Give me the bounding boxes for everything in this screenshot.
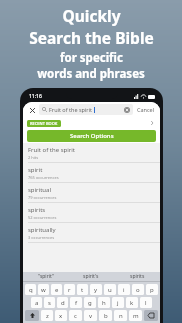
button[interactable]: a <box>31 297 42 308</box>
button[interactable]: y <box>90 284 102 295</box>
staticText: o <box>136 286 140 294</box>
button[interactable]: Backspace <box>144 310 158 321</box>
staticText: i <box>123 286 125 294</box>
staticText: a <box>35 299 39 307</box>
button[interactable]: s <box>44 297 55 308</box>
staticText: q <box>29 286 33 294</box>
button[interactable]: i <box>118 284 130 295</box>
button[interactable]: Fruit of the spirit <box>23 143 160 163</box>
staticText: z <box>46 312 49 320</box>
staticText: "spirit" <box>38 273 54 280</box>
staticText: u <box>108 286 112 294</box>
staticText: RECENT BOOK <box>30 121 58 126</box>
staticText: e <box>55 286 59 294</box>
staticText: 765 occurrences <box>28 175 59 180</box>
staticText: 52 occurrences <box>28 215 57 220</box>
staticText: Search the Bible <box>29 27 154 48</box>
staticText: r <box>68 286 71 294</box>
staticText: k <box>130 299 134 307</box>
staticText: 79 occurrences <box>28 195 57 200</box>
staticText: Cancel <box>137 106 155 113</box>
button[interactable]: e <box>51 284 62 295</box>
staticText: t <box>81 286 84 294</box>
staticText: j <box>117 299 119 307</box>
staticText: words and phrases <box>37 66 145 82</box>
staticText: spirit <box>28 166 43 174</box>
button[interactable]: k <box>126 297 138 308</box>
button[interactable]: u <box>104 284 116 295</box>
button[interactable]: b <box>99 310 112 321</box>
staticText: 11:16 <box>29 93 42 100</box>
staticText: y <box>94 286 98 294</box>
button[interactable]: c <box>69 310 82 321</box>
button[interactable]: g <box>84 297 96 308</box>
button[interactable]: d <box>57 297 68 308</box>
staticText: h <box>102 299 106 307</box>
staticText: spiritual <box>28 186 51 194</box>
staticText: v <box>89 312 93 320</box>
staticText: g <box>88 299 92 307</box>
button[interactable]: RECENT BOOK <box>27 120 61 127</box>
button[interactable]: w <box>38 284 49 295</box>
button[interactable]: spiritually <box>23 223 160 243</box>
staticText: n <box>119 312 123 320</box>
staticText: s <box>48 299 51 307</box>
button[interactable]: h <box>98 297 110 308</box>
staticText: 3 occurrences <box>28 235 55 240</box>
staticText: p <box>150 286 154 294</box>
button[interactable]: spirit <box>23 163 160 183</box>
button[interactable]: j <box>112 297 124 308</box>
staticText: spiritually <box>28 226 56 234</box>
staticText: spirits <box>130 273 145 280</box>
button[interactable]: Cancel <box>136 106 156 113</box>
staticText: spirit's <box>83 273 99 280</box>
button[interactable]: More <box>148 119 156 127</box>
staticText: Fruit of the spirit <box>28 146 75 154</box>
button[interactable]: spiritual <box>23 183 160 203</box>
button[interactable]: Fruit of the spirit <box>39 104 133 115</box>
staticText: c <box>74 312 77 320</box>
staticText: x <box>59 312 63 320</box>
button[interactable]: Close <box>27 105 37 115</box>
staticText: b <box>104 312 108 320</box>
button[interactable]: m <box>129 310 142 321</box>
button[interactable]: q <box>25 284 36 295</box>
button[interactable]: Shift <box>25 310 39 321</box>
button[interactable]: o <box>132 284 144 295</box>
button[interactable]: z <box>41 310 53 321</box>
button[interactable]: p <box>146 284 158 295</box>
staticText: for specific <box>60 50 123 66</box>
button[interactable]: "spirit" <box>23 272 68 281</box>
staticText: d <box>61 299 65 307</box>
staticText: m <box>133 312 139 320</box>
staticText: w <box>41 286 46 294</box>
staticText: Search Options <box>70 132 114 140</box>
button[interactable]: n <box>114 310 127 321</box>
staticText: f <box>75 299 78 307</box>
button[interactable]: spirits <box>23 203 160 223</box>
staticText: spirits <box>28 206 46 214</box>
button[interactable]: Search Options <box>27 130 156 142</box>
button[interactable]: spirits <box>114 272 160 281</box>
button[interactable]: r <box>64 284 75 295</box>
button[interactable]: v <box>84 310 97 321</box>
staticText: 2 hits <box>28 155 39 160</box>
staticText: Quickly <box>62 5 121 26</box>
button[interactable]: l <box>140 297 152 308</box>
staticText: l <box>145 299 147 307</box>
button[interactable]: f <box>70 297 82 308</box>
button[interactable]: spirit's <box>68 272 114 281</box>
button[interactable]: x <box>55 310 67 321</box>
staticText: Fruit of the spirit <box>49 106 93 113</box>
button[interactable]: t <box>77 284 88 295</box>
